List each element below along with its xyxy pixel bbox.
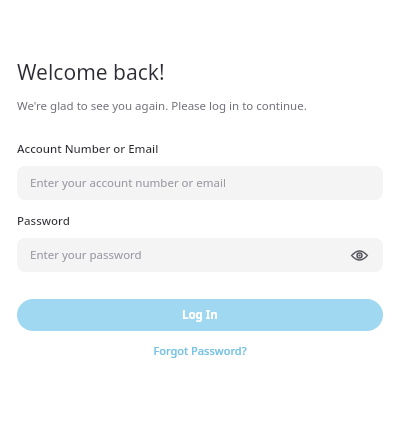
- button[interactable]: Enter your account number or email: [17, 166, 383, 200]
- staticText: Enter your password: [30, 247, 142, 263]
- button[interactable]: Log In: [17, 299, 383, 331]
- staticText: We're glad to see you again. Please log …: [17, 98, 307, 114]
- staticText: Forgot Password?: [153, 343, 247, 358]
- staticText: Account Number or Email: [17, 141, 159, 157]
- staticText: Log In: [182, 307, 218, 323]
- staticText: Password: [17, 213, 70, 229]
- button[interactable]: Show password: [349, 245, 369, 265]
- staticText: Welcome back!: [17, 58, 165, 87]
- button[interactable]: Enter your password: [17, 238, 383, 272]
- staticText: Enter your account number or email: [30, 175, 226, 191]
- button[interactable]: Forgot Password?: [17, 343, 383, 358]
